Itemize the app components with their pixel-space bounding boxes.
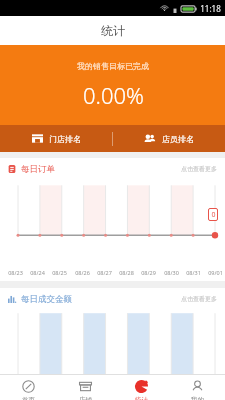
- other: 首页: [22, 380, 35, 393]
- staticText: 08/28: [119, 269, 134, 276]
- button[interactable]: 店员排名: [113, 125, 225, 152]
- button[interactable]: 我的: [169, 375, 225, 400]
- other: 店员排名: [144, 133, 156, 145]
- staticText: 门店排名: [49, 134, 81, 144]
- staticText: 我的: [191, 396, 204, 400]
- staticText: 我的销售目标已完成: [77, 61, 149, 71]
- staticText: 08/25: [52, 269, 67, 276]
- staticText: 统计: [101, 23, 125, 38]
- staticText: 08/30: [164, 269, 179, 276]
- staticText: 08/23: [8, 269, 23, 276]
- button[interactable]: 点击查看更多: [181, 165, 217, 173]
- staticText: 08/27: [97, 269, 112, 276]
- staticText: 首页: [22, 396, 35, 400]
- button[interactable]: 点击查看更多: [181, 295, 217, 303]
- staticText: 08/31: [186, 269, 201, 276]
- staticText: 08/26: [75, 269, 90, 276]
- other: 门店排名: [32, 133, 43, 144]
- button[interactable]: 门店排名: [0, 125, 112, 152]
- staticText: 点击查看更多: [181, 165, 217, 173]
- staticText: 08/29: [141, 269, 156, 276]
- staticText: 点击查看更多: [181, 295, 217, 303]
- other: 店铺: [79, 380, 92, 393]
- staticText: 0: [211, 210, 216, 220]
- staticText: 09/01: [208, 269, 223, 276]
- staticText: 11:18: [200, 3, 221, 14]
- staticText: 统计: [135, 396, 148, 400]
- button[interactable]: 店铺: [57, 375, 113, 400]
- button[interactable]: 统计: [113, 375, 169, 400]
- other: 我的: [191, 380, 204, 393]
- staticText: 08/24: [30, 269, 45, 276]
- staticText: 0.00%: [83, 80, 144, 110]
- staticText: 每日订单: [21, 164, 55, 175]
- button[interactable]: 首页: [0, 375, 57, 400]
- other: 统计: [135, 380, 148, 393]
- staticText: 店铺: [79, 396, 92, 400]
- staticText: 店员排名: [162, 134, 194, 144]
- staticText: 每日成交金额: [21, 294, 72, 305]
